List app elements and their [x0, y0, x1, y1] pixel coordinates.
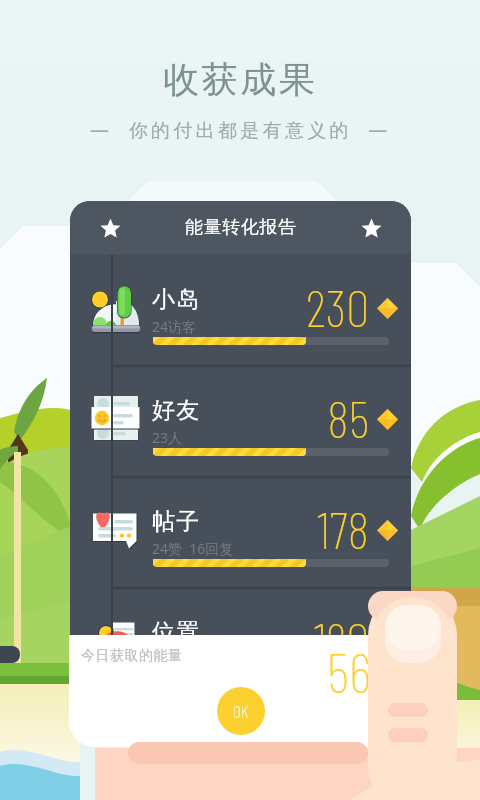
staticText: 收获成果: [163, 57, 318, 102]
button[interactable]: 好友: [70, 365, 411, 476]
button[interactable]: 位置: [70, 587, 411, 681]
staticText: 能量转化报告: [185, 216, 296, 239]
button[interactable]: 帖子: [70, 476, 411, 587]
staticText: 24赞 16回复: [152, 539, 234, 558]
staticText: 230: [306, 275, 369, 337]
button[interactable]: Star: [355, 212, 387, 244]
button[interactable]: OK: [217, 687, 265, 735]
staticText: 小岛: [152, 285, 201, 314]
button[interactable]: 小岛: [70, 254, 411, 365]
staticText: — 你的付出都是有意义的 —: [90, 117, 391, 143]
button[interactable]: Favourite: [94, 212, 126, 244]
staticText: 178: [317, 497, 369, 559]
staticText: 120: [313, 608, 369, 670]
staticText: 今日获取的能量: [81, 647, 183, 665]
staticText: OK: [233, 701, 249, 721]
staticText: 位置: [152, 618, 201, 647]
staticText: 12次签到: [152, 650, 211, 669]
staticText: 好友: [152, 396, 201, 425]
staticText: 568: [327, 637, 368, 704]
staticText: 85: [327, 386, 369, 448]
staticText: 24访客: [152, 317, 197, 336]
staticText: 帖子: [152, 507, 201, 536]
staticText: 23人: [152, 428, 183, 447]
